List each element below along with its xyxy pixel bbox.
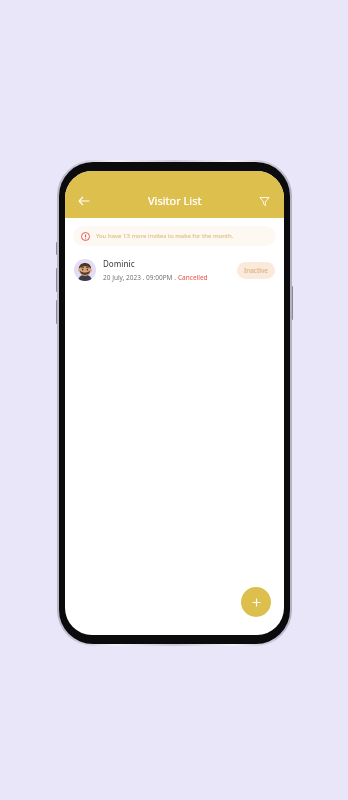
staticText: 20 July, 2023 . 09:00PM . xyxy=(103,273,178,282)
button[interactable]: Add visitor xyxy=(241,587,271,617)
button[interactable]: Back xyxy=(73,190,95,212)
staticText: Inactive xyxy=(244,266,268,275)
staticText: Dominic xyxy=(103,258,135,269)
button[interactable]: You have 13 more invites to make for the… xyxy=(73,226,276,246)
staticText: Cancelled xyxy=(178,273,208,282)
staticText: You have 13 more invites to make for the… xyxy=(96,232,234,240)
button[interactable]: Filter xyxy=(253,190,275,212)
button[interactable]: Inactive xyxy=(237,262,275,279)
button[interactable]: Dominic xyxy=(74,258,275,282)
staticText: Visitor List xyxy=(148,193,202,208)
